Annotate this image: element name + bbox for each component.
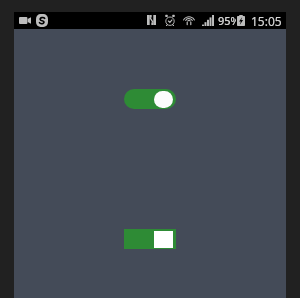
other: Battery charging <box>237 15 245 26</box>
other: Mobile signal <box>202 15 214 26</box>
other: NFC enabled <box>147 15 156 25</box>
button[interactable]: Square switch, on <box>124 229 176 249</box>
button[interactable]: Rounded switch, on <box>124 89 176 109</box>
other: Wi-Fi signal <box>183 14 195 26</box>
staticText: 95% <box>218 13 236 28</box>
staticText: 15:05 <box>251 13 282 29</box>
other: Skype <box>36 14 48 27</box>
other: Screen recording <box>19 17 31 24</box>
other: Alarm set <box>165 14 175 26</box>
